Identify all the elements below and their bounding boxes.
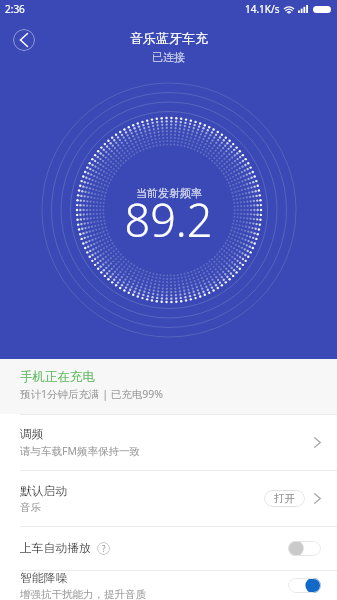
button[interactable]: On [288,578,321,593]
staticText: 请与车载FM频率保持一致 [20,444,140,458]
staticText: 14.1K/s [245,2,280,16]
button[interactable]: Back [13,29,35,51]
staticText: 手机正在充电 [20,369,95,385]
staticText: 增强抗干扰能力，提升音质 [20,588,146,600]
staticText: 音乐 [20,501,41,514]
button[interactable]: 默认启动 [0,471,337,526]
staticText: 智能降噪 [20,571,68,586]
staticText: 已连接 [152,50,185,64]
button[interactable]: 上车自动播放 [0,527,337,570]
staticText: 默认启动 [20,484,68,499]
button[interactable]: Help [97,542,110,555]
staticText: 音乐蓝牙车充 [130,30,208,46]
button[interactable]: 调频 [0,415,337,470]
staticText: 调频 [20,427,44,442]
staticText: 打开 [274,492,295,505]
staticText: 89.2 [124,189,213,250]
staticText: 上车自动播放 [20,541,91,556]
staticText: ? [102,543,106,554]
staticText: 当前发射频率 [136,186,202,200]
staticText: 预计1分钟后充满 | 已充电99% [20,387,163,401]
staticText: 2:36 [5,2,25,16]
button[interactable]: 智能降噪 [0,571,337,600]
button[interactable]: 打开 [264,490,305,507]
button[interactable]: Off [288,541,321,556]
